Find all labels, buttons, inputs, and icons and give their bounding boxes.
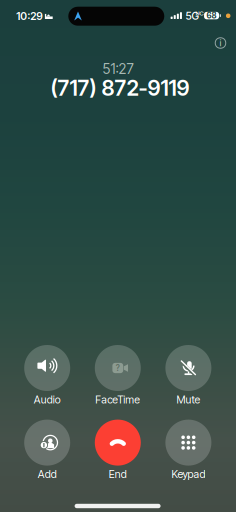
- button[interactable]: Audio: [14, 345, 80, 404]
- button[interactable]: Keypad: [155, 420, 221, 479]
- staticText: Mute: [176, 393, 200, 406]
- staticText: End: [109, 468, 127, 480]
- staticText: (717) 872-9119: [50, 75, 189, 101]
- staticText: 10:29: [16, 9, 43, 22]
- staticText: FaceTime: [95, 393, 140, 406]
- button[interactable]: ?: [85, 345, 151, 404]
- button[interactable]: Add: [14, 420, 80, 479]
- staticText: Audio: [34, 393, 61, 406]
- staticText: Add: [38, 468, 57, 480]
- staticText: 51:27: [102, 60, 133, 77]
- button[interactable]: Call details: [207, 30, 233, 56]
- staticText: i: [219, 37, 221, 48]
- staticText: ?: [116, 363, 120, 373]
- button[interactable]: Mute: [155, 345, 221, 404]
- staticText: 68: [207, 11, 217, 20]
- button[interactable]: End: [85, 420, 151, 479]
- staticText: UC: [195, 10, 203, 17]
- staticText: 5G: [186, 9, 200, 22]
- staticText: Keypad: [171, 468, 205, 480]
